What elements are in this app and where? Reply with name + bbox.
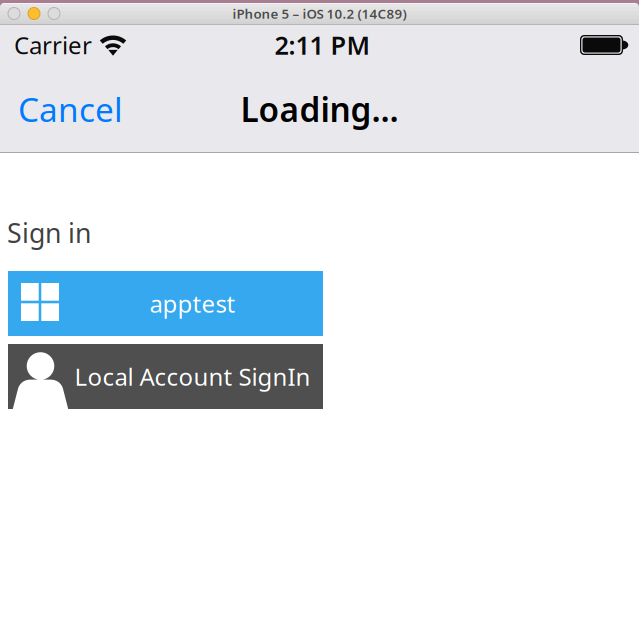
staticText: Sign in <box>7 215 91 250</box>
staticText: Local Account SignIn <box>74 361 310 392</box>
staticText: Loading... <box>240 87 398 131</box>
button[interactable]: apptest <box>8 271 323 336</box>
button[interactable]: Close <box>8 7 20 19</box>
staticText: apptest <box>149 288 235 319</box>
button[interactable]: Cancel <box>0 65 137 153</box>
staticText: Carrier <box>14 29 92 61</box>
button[interactable]: Local Account SignIn <box>8 344 323 409</box>
button[interactable]: Zoom <box>48 7 60 19</box>
button[interactable]: Minimise <box>28 7 40 19</box>
staticText: iPhone 5 – iOS 10.2 (14C89) <box>232 5 406 22</box>
staticText: Cancel <box>18 87 123 131</box>
staticText: 2:11 PM <box>274 28 370 62</box>
